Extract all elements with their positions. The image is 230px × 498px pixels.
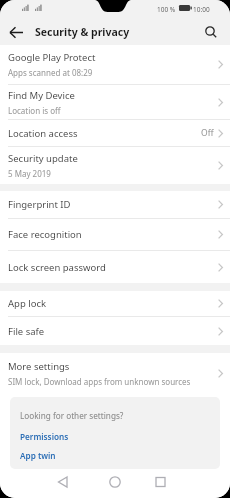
staticText: Face recognition <box>8 228 82 241</box>
staticText: Apps scanned at 08:29 <box>8 67 93 78</box>
staticText: Location access <box>8 127 78 140</box>
staticText: File safe <box>8 325 45 338</box>
staticText: 10:00 <box>193 5 210 14</box>
button[interactable]: App lock <box>0 291 230 316</box>
staticText: SIM lock, Download apps from unknown sou… <box>8 376 191 387</box>
button[interactable]: Security update <box>0 147 230 184</box>
staticText: Looking for other settings? <box>20 410 124 421</box>
staticText: Security update <box>8 152 78 165</box>
staticText: More settings <box>8 360 70 373</box>
button[interactable]: File safe <box>0 317 230 345</box>
staticText: Fingerprint ID <box>8 198 71 211</box>
staticText: Google Play Protect <box>8 51 96 64</box>
button[interactable]: App twin <box>20 450 56 461</box>
staticText: Location is off <box>8 105 61 116</box>
staticText: Off <box>201 127 214 139</box>
button[interactable]: Location access <box>0 120 230 146</box>
button[interactable] <box>6 22 26 42</box>
button[interactable] <box>153 469 230 498</box>
button[interactable] <box>202 23 220 41</box>
button[interactable]: Permissions <box>20 431 69 442</box>
staticText: 100 % <box>157 5 176 14</box>
button[interactable] <box>76 469 153 498</box>
button[interactable] <box>0 469 76 498</box>
button[interactable]: Fingerprint ID <box>0 191 230 218</box>
button[interactable]: Lock screen password <box>0 251 230 283</box>
staticText: App lock <box>8 297 47 310</box>
staticText: Security & privacy <box>35 25 130 39</box>
button[interactable]: Face recognition <box>0 219 230 250</box>
button[interactable]: More settings <box>0 353 230 393</box>
button[interactable]: Find My Device <box>0 85 230 119</box>
staticText: Find My Device <box>8 89 75 102</box>
button[interactable]: Google Play Protect <box>0 45 230 84</box>
staticText: Lock screen password <box>8 261 106 274</box>
staticText: 5 May 2019 <box>8 168 51 179</box>
